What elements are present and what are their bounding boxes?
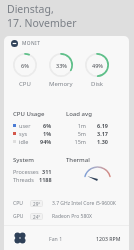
staticText: 1203 RPM bbox=[96, 235, 121, 242]
staticText: Thermal bbox=[66, 156, 90, 164]
button[interactable]: Fan bbox=[13, 226, 122, 250]
staticText: CPU bbox=[13, 200, 30, 207]
staticText: Radeon Pro 580X bbox=[52, 213, 93, 220]
staticText: 94% bbox=[40, 138, 52, 145]
staticText: CPU bbox=[19, 80, 31, 88]
staticText: 1m bbox=[66, 122, 86, 129]
staticText: 1% bbox=[43, 130, 52, 137]
staticText: CPU Usage bbox=[13, 110, 45, 118]
button[interactable]: Monit app icon bbox=[11, 36, 129, 50]
staticText: 24° bbox=[33, 214, 41, 220]
staticText: 15m bbox=[66, 138, 86, 145]
staticText: Disk bbox=[91, 80, 104, 88]
staticText: 3.7 GHz Intel Core i5-9600K bbox=[52, 200, 116, 207]
other: Monit app icon bbox=[11, 40, 18, 47]
staticText: idle bbox=[19, 138, 29, 145]
staticText: Threads bbox=[13, 176, 34, 183]
staticText: Processes bbox=[13, 168, 39, 175]
staticText: Load avg bbox=[66, 110, 92, 118]
staticText: Fan 1 bbox=[49, 235, 63, 242]
button[interactable]: CPU bbox=[13, 199, 122, 208]
staticText: Dienstag, bbox=[7, 2, 54, 16]
staticText: 17. November bbox=[7, 16, 77, 30]
other: Fan bbox=[13, 231, 27, 245]
staticText: 1.30 bbox=[97, 138, 108, 145]
staticText: System bbox=[13, 156, 34, 164]
staticText: Memory bbox=[49, 80, 73, 88]
staticText: user bbox=[19, 122, 31, 129]
staticText: 6% bbox=[43, 122, 52, 129]
staticText: 3.17 bbox=[97, 130, 108, 137]
staticText: 1188 bbox=[39, 176, 52, 183]
staticText: MONIT bbox=[22, 40, 41, 47]
staticText: 33% bbox=[56, 62, 67, 69]
staticText: 29° bbox=[33, 201, 41, 207]
staticText: 6.19 bbox=[97, 122, 108, 129]
staticText: 5m bbox=[66, 130, 86, 137]
staticText: 49% bbox=[92, 62, 103, 69]
staticText: 6% bbox=[21, 62, 29, 69]
button[interactable]: GPU bbox=[13, 212, 122, 221]
staticText: sys bbox=[19, 130, 28, 137]
staticText: GPU bbox=[13, 213, 30, 220]
staticText: 311 bbox=[42, 168, 52, 175]
